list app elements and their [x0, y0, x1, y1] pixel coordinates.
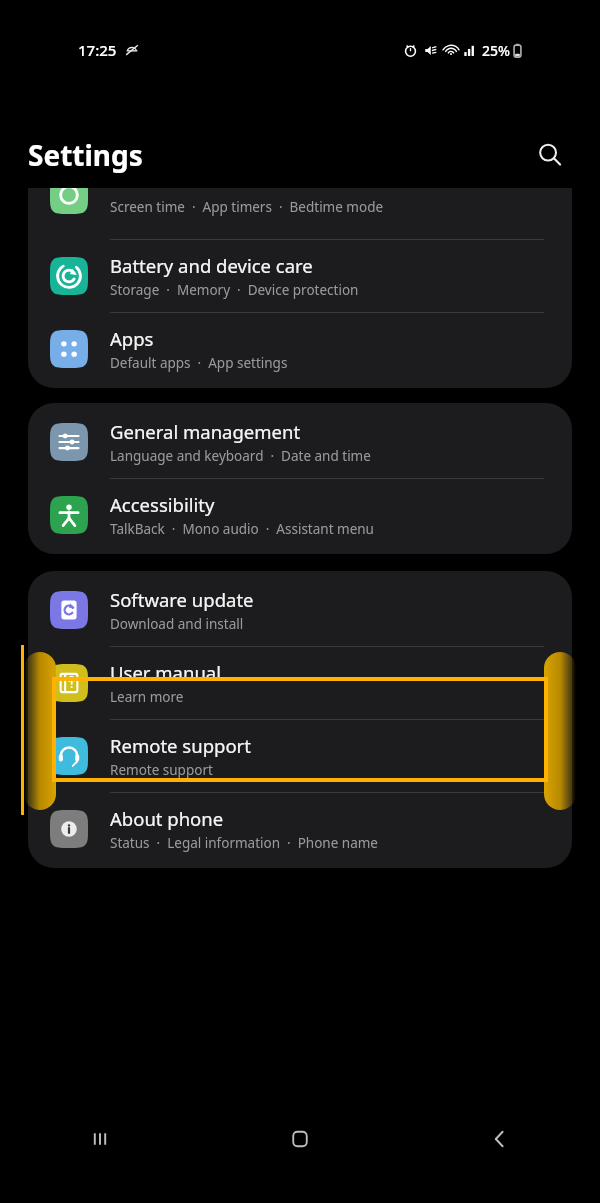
- staticText: User manual: [110, 660, 221, 685]
- button[interactable]: Remote support: [28, 733, 572, 806]
- staticText: About phone: [110, 806, 224, 831]
- staticText: Storage · Memory · Device protection: [110, 281, 359, 299]
- staticText: 25%: [482, 41, 510, 60]
- staticText: Language and keyboard · Date and time: [110, 447, 371, 465]
- button[interactable]: Search: [528, 133, 572, 177]
- staticText: Settings: [28, 136, 143, 174]
- staticText: Apps: [110, 326, 154, 351]
- staticText: Software update: [110, 587, 254, 612]
- button[interactable]: About phone: [28, 806, 572, 852]
- button[interactable]: Recents: [0, 1111, 200, 1167]
- staticText: Remote support: [110, 761, 213, 779]
- button[interactable]: Back: [400, 1111, 600, 1167]
- button[interactable]: General management: [28, 419, 572, 492]
- button[interactable]: Software update: [28, 587, 572, 660]
- staticText: Default apps · App settings: [110, 354, 288, 372]
- button[interactable]: Accessibility: [28, 492, 572, 538]
- staticText: Download and install: [110, 615, 244, 633]
- staticText: Learn more: [110, 688, 184, 706]
- staticText: Accessibility: [110, 492, 215, 517]
- staticText: Status · Legal information · Phone name: [110, 834, 378, 852]
- button[interactable]: Battery and device care: [28, 253, 572, 326]
- staticText: Screen time · App timers · Bedtime mode: [110, 198, 384, 216]
- staticText: General management: [110, 419, 301, 444]
- staticText: 17:25: [78, 40, 117, 60]
- button[interactable]: Screen time · App timers · Bedtime mode: [28, 188, 572, 253]
- button[interactable]: User manual: [28, 660, 572, 733]
- staticText: Remote support: [110, 733, 251, 758]
- staticText: Battery and device care: [110, 253, 313, 278]
- button[interactable]: Home: [200, 1111, 400, 1167]
- button[interactable]: Apps: [28, 326, 572, 372]
- staticText: TalkBack · Mono audio · Assistant menu: [110, 520, 374, 538]
